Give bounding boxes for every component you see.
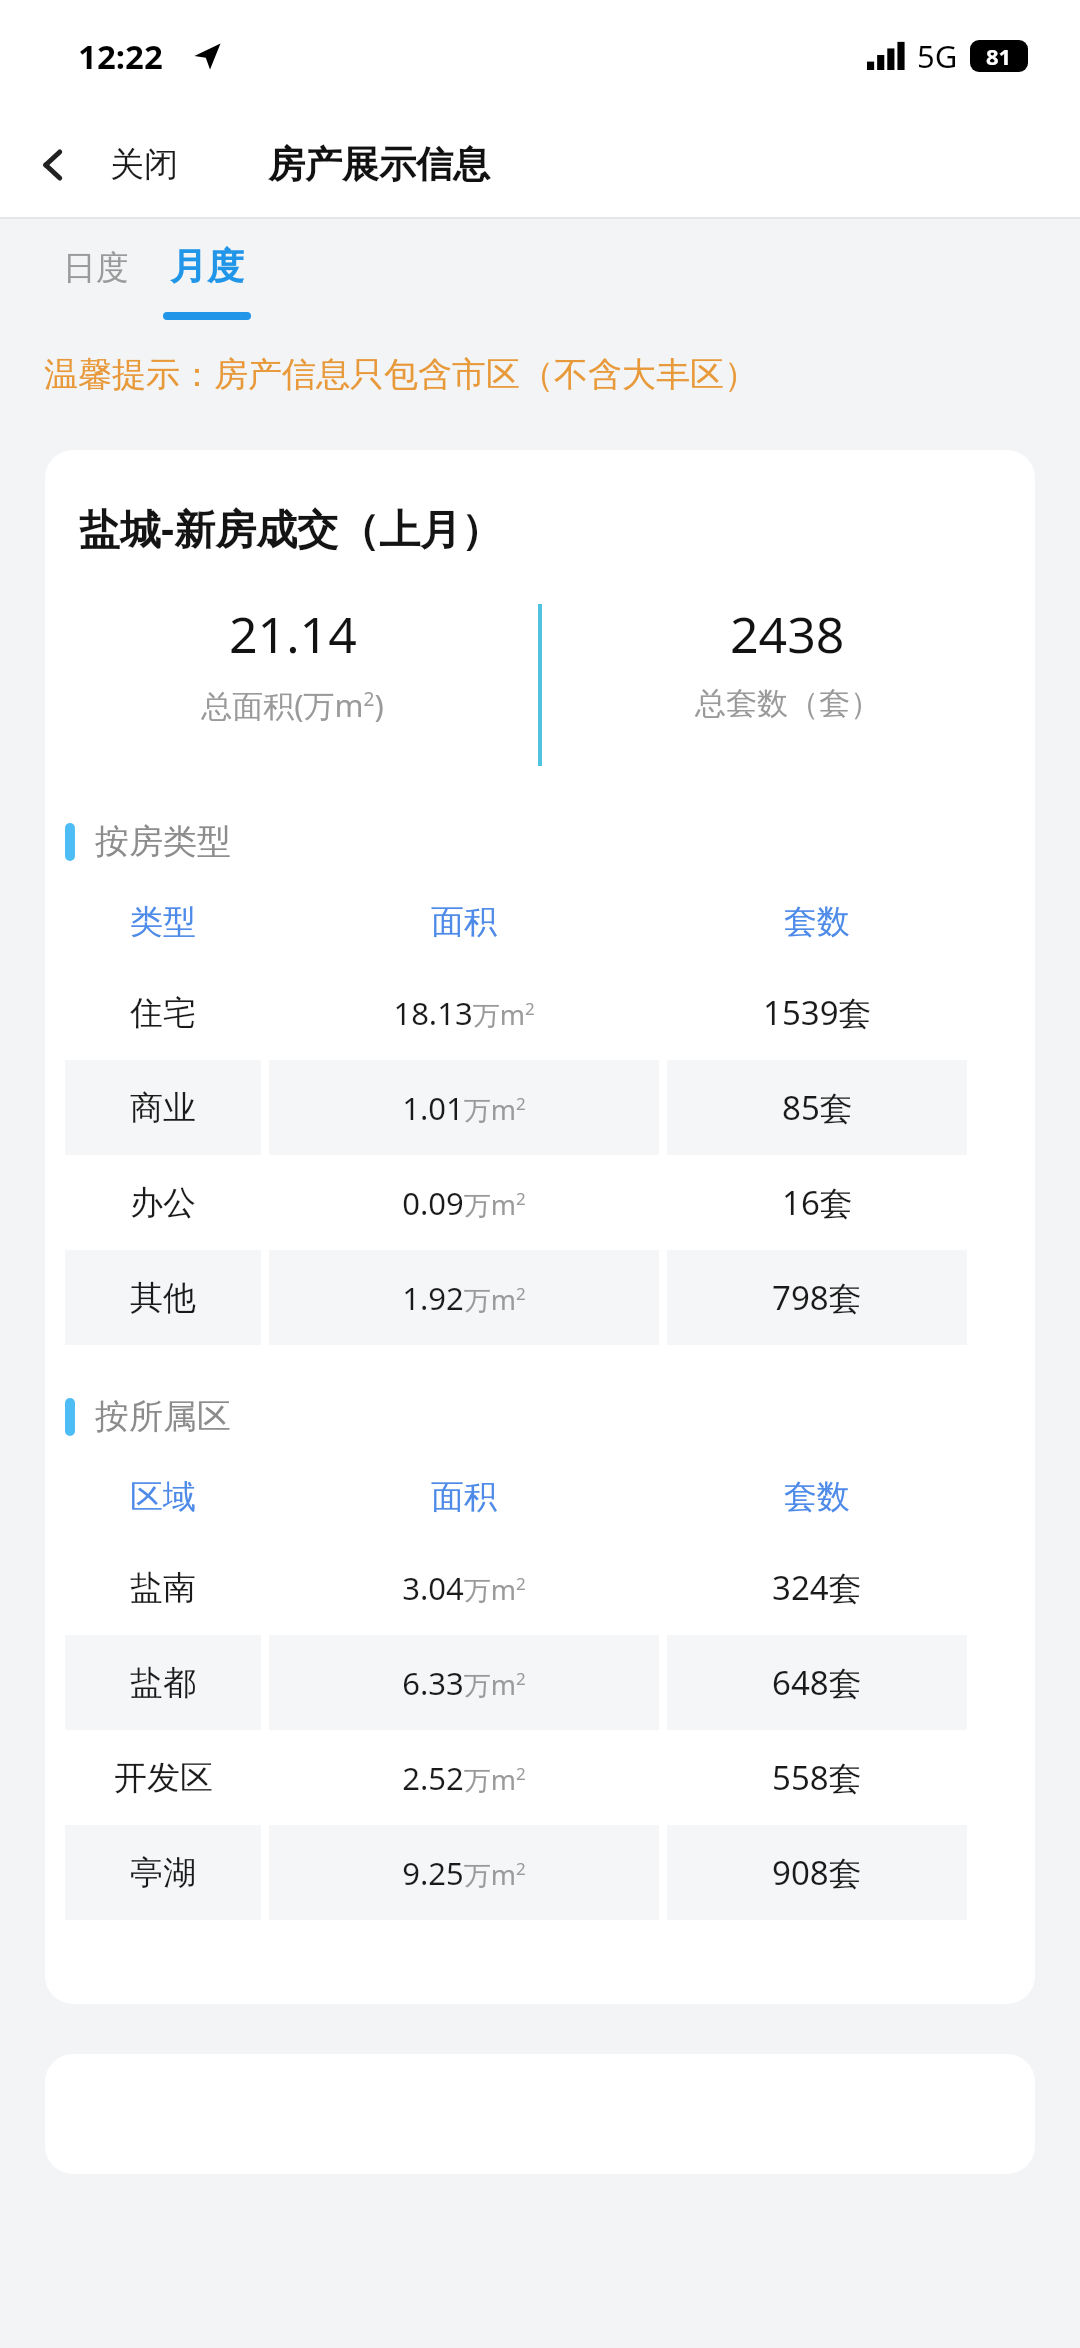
staticText: 81 [986,41,1012,71]
staticText: 开发区 [114,1757,213,1799]
staticText: 温馨提示：房产信息只包含市区（不含大丰区） [44,353,758,396]
staticText: 648套 [772,1660,862,1705]
staticText: 盐城-新房成交（上月） [79,500,503,556]
staticText: 558套 [772,1755,862,1800]
staticText: 盐都 [130,1662,196,1704]
staticText: 日度 [63,247,129,289]
staticText: 房产展示信息 [268,141,490,188]
staticText: 1539套 [763,990,872,1035]
staticText: 85套 [782,1085,853,1130]
staticText: 21.14 [229,600,357,668]
staticText: 亭湖 [130,1852,196,1894]
button[interactable]: 盐城-新房成交（上月） [45,450,1035,2004]
staticText: 住宅 [130,992,196,1034]
staticText: 总套数（套） [695,684,881,723]
staticText: 3.04万m2 [402,1567,526,1609]
staticText: 面积 [431,901,497,943]
staticText: 套数 [784,901,850,943]
button[interactable]: Back [30,141,78,189]
button[interactable]: 日度 [48,219,144,347]
staticText: 套数 [784,1476,850,1518]
staticText: 16套 [782,1180,853,1225]
staticText: 关闭 [110,143,178,186]
staticText: 商业 [130,1087,196,1129]
staticText: 1.01万m2 [402,1087,526,1129]
staticText: 798套 [772,1275,862,1320]
staticText: 办公 [130,1182,196,1224]
staticText: 0.09万m2 [402,1182,526,1224]
staticText: 5G [917,35,958,77]
staticText: 12:22 [78,34,163,79]
staticText: 9.25万m2 [402,1852,526,1894]
staticText: 其他 [130,1277,196,1319]
staticText: 2.52万m2 [402,1757,526,1799]
staticText: 月度 [170,243,244,290]
staticText: 类型 [130,901,196,943]
staticText: 面积 [431,1476,497,1518]
staticText: 2438 [730,600,845,668]
staticText: 18.13万m2 [393,992,535,1034]
staticText: 区域 [130,1476,196,1518]
staticText: 6.33万m2 [402,1662,526,1704]
staticText: 按房类型 [95,820,231,863]
staticText: 总面积(万m2) [201,684,384,726]
staticText: 1.92万m2 [402,1277,526,1319]
staticText: 908套 [772,1850,862,1895]
button[interactable]: 关闭 [100,135,188,194]
staticText: 盐南 [130,1567,196,1609]
button[interactable]: 月度 [152,219,262,347]
staticText: 324套 [772,1565,862,1610]
staticText: 按所属区 [95,1395,231,1438]
